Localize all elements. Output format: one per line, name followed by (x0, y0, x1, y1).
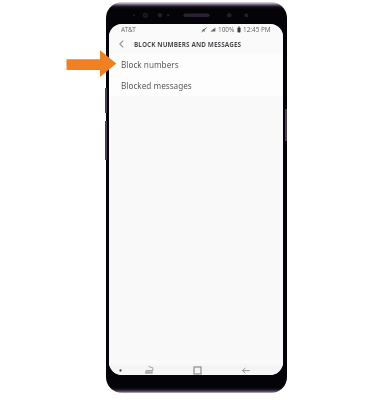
button[interactable]: Home (190, 365, 204, 375)
button[interactable]: Block numbers (109, 54, 283, 75)
staticText: 100% (218, 25, 235, 34)
button[interactable]: Back (239, 365, 253, 375)
button[interactable]: Recent apps (142, 364, 156, 375)
button[interactable]: Navigate up (109, 34, 134, 54)
button[interactable]: Navigate up (109, 34, 283, 54)
staticText: BLOCK NUMBERS AND MESSAGES (134, 40, 242, 49)
staticText: 12:45 PM (243, 25, 271, 34)
button[interactable]: Blocked messages (109, 75, 283, 96)
staticText: Blocked messages (121, 80, 192, 91)
staticText: AT&T (121, 25, 136, 34)
staticText: Block numbers (121, 59, 179, 70)
